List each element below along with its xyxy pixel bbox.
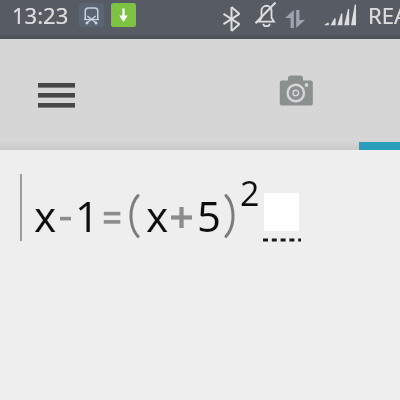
button[interactable]: Equation editor [14, 165, 314, 250]
staticText: 1 [75, 187, 100, 244]
staticText: REA [368, 0, 400, 30]
staticText: 13:23 [12, 0, 69, 30]
button[interactable]: Menu [30, 71, 82, 119]
button[interactable]: Camera [272, 65, 320, 117]
staticText: x [34, 187, 57, 244]
staticText: 5 [197, 187, 222, 244]
staticText: 2 [240, 170, 260, 216]
staticText: x [146, 187, 169, 244]
